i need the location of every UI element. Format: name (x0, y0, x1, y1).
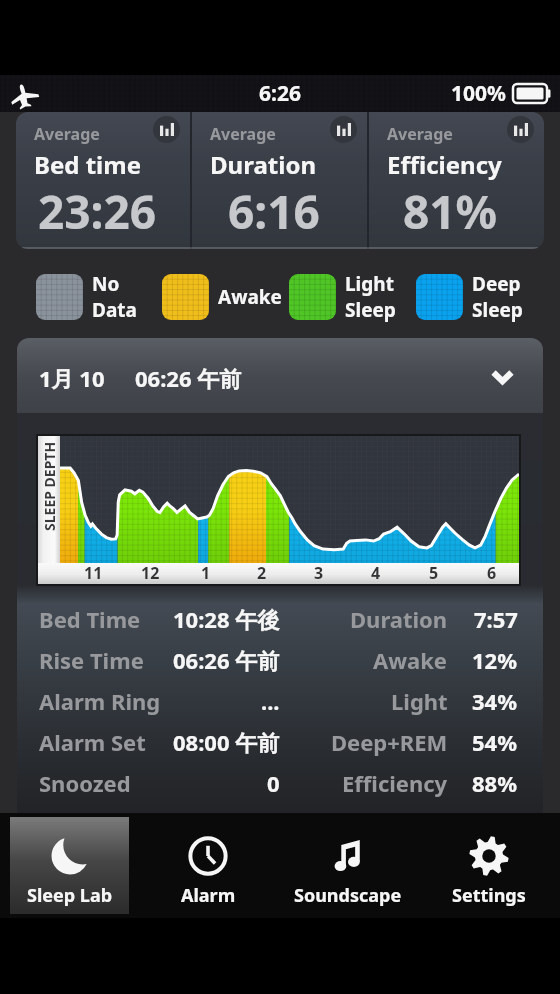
staticText: 10:28 午後 (173, 604, 280, 634)
staticText: 7:57 (474, 604, 518, 634)
staticText: Efficiency (342, 768, 448, 798)
staticText: 88% (472, 768, 518, 798)
other: Soundscape (327, 835, 369, 877)
button[interactable]: Average (192, 112, 367, 249)
button[interactable]: Awake (162, 263, 282, 330)
staticText: Awake (218, 284, 282, 310)
staticText: Duration (210, 148, 316, 181)
staticText: 1月 10 (39, 363, 105, 393)
staticText: Sleep Lab (27, 883, 113, 908)
staticText: 81% (403, 180, 498, 243)
other: Chart (330, 116, 357, 143)
staticText: Efficiency (387, 148, 502, 181)
staticText: 34% (472, 686, 518, 716)
staticText: Bed Time (39, 604, 141, 634)
staticText: Rise Time (39, 645, 144, 675)
button[interactable]: Alarm (143, 817, 273, 914)
staticText: No (92, 271, 120, 297)
staticText: 06:26 午前 (135, 363, 242, 393)
other: Expand (491, 370, 514, 384)
button[interactable]: Sleep Lab (10, 817, 129, 914)
staticText: 6:16 (228, 180, 320, 243)
staticText: Soundscape (294, 883, 402, 908)
staticText: 5 (429, 562, 439, 582)
staticText: 2 (257, 562, 267, 582)
staticText: Awake (373, 645, 448, 675)
staticText: Average (210, 123, 276, 145)
staticText: 3 (314, 562, 324, 582)
staticText: Light (345, 271, 394, 297)
staticText: 6:26 (259, 79, 301, 108)
staticText: Deep (472, 271, 521, 297)
staticText: 6 (487, 562, 497, 582)
button[interactable]: Settings (424, 817, 554, 914)
staticText: 4 (371, 562, 381, 582)
button[interactable]: Soundscape (273, 817, 423, 914)
button[interactable]: Average (369, 112, 544, 249)
staticText: 12 (141, 562, 160, 582)
staticText: Average (387, 123, 453, 145)
staticText: Settings (452, 883, 526, 908)
staticText: 23:26 (38, 180, 157, 243)
other: Chart (153, 116, 180, 143)
staticText: Alarm Ring (39, 686, 161, 716)
button[interactable]: 1月 10 (17, 338, 543, 413)
staticText: 06:26 午前 (173, 645, 280, 675)
staticText: 12% (472, 645, 518, 675)
staticText: Data (92, 297, 137, 323)
staticText: Alarm (181, 883, 236, 908)
staticText: Deep+REM (331, 727, 448, 757)
staticText: Duration (350, 604, 448, 634)
staticText: Light (391, 686, 448, 716)
other: Settings (468, 835, 510, 877)
staticText: 11 (84, 562, 103, 582)
staticText: 54% (472, 727, 518, 757)
button[interactable]: Average (16, 112, 190, 249)
button[interactable]: Light (289, 263, 396, 330)
staticText: Snoozed (39, 768, 131, 798)
staticText: Sleep (472, 297, 523, 323)
staticText: Bed time (34, 148, 142, 181)
other: Alarm (187, 835, 229, 877)
button[interactable]: No (36, 263, 137, 330)
staticText: Alarm Set (39, 727, 146, 757)
staticText: Average (34, 123, 100, 145)
other: Sleep Lab (49, 835, 91, 877)
staticText: SLEEP DEPTH (40, 441, 59, 531)
staticText: 100% (451, 79, 506, 108)
staticText: ... (261, 686, 280, 716)
staticText: 1 (201, 562, 211, 582)
staticText: Sleep (345, 297, 396, 323)
other: Chart (507, 116, 534, 143)
staticText: 08:00 午前 (173, 727, 280, 757)
button[interactable]: Deep (416, 263, 523, 330)
staticText: 0 (267, 768, 280, 798)
